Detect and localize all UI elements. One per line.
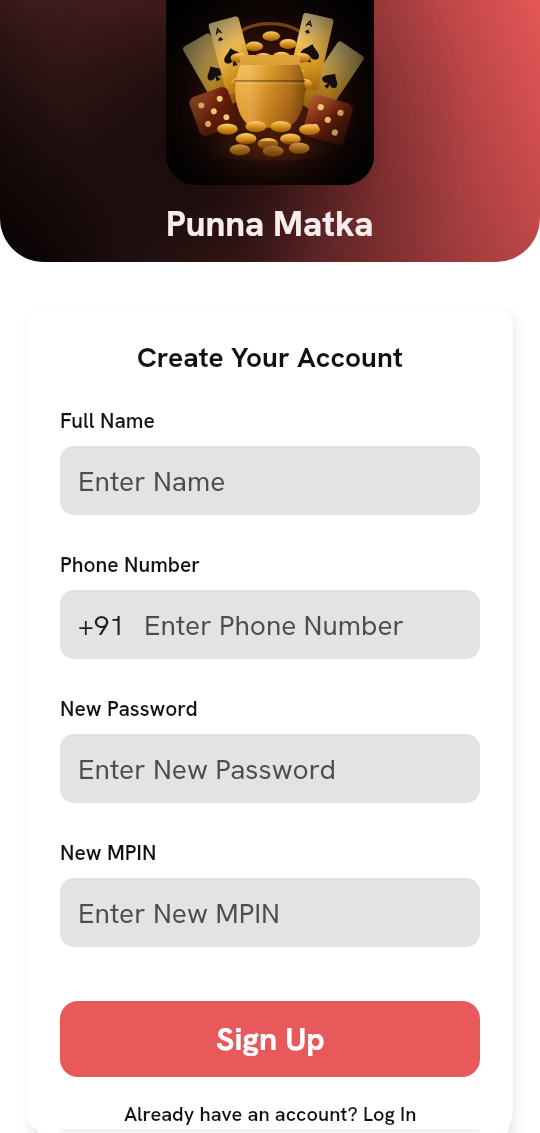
staticText: Enter New MPIN: [78, 895, 280, 931]
button[interactable]: Already have an account? Log In: [60, 1101, 480, 1127]
staticText: Sign Up: [216, 1018, 325, 1060]
button[interactable]: Enter New Password: [60, 734, 480, 803]
staticText: Enter Phone Number: [144, 607, 404, 643]
button[interactable]: Sign Up: [60, 1001, 480, 1077]
staticText: Create Your Account: [137, 339, 403, 375]
button[interactable]: Enter Name: [60, 446, 480, 515]
button[interactable]: Enter New MPIN: [60, 878, 480, 947]
staticText: New MPIN: [60, 839, 157, 866]
staticText: Phone Number: [60, 551, 201, 578]
staticText: Already have an account? Log In: [124, 1101, 417, 1127]
staticText: New Password: [60, 695, 198, 722]
staticText: Enter New Password: [78, 751, 336, 787]
button[interactable]: +91: [60, 590, 480, 659]
staticText: Punna Matka: [166, 201, 374, 247]
staticText: Full Name: [60, 407, 155, 434]
staticText: Enter Name: [78, 463, 226, 499]
staticText: +91: [78, 607, 126, 643]
